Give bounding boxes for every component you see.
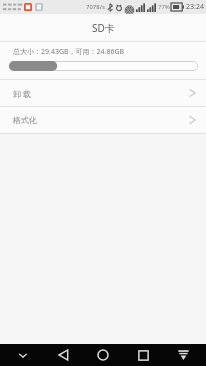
staticText: SD卡 <box>92 21 115 35</box>
staticText: 77% <box>158 3 170 11</box>
button[interactable]: 格式化 <box>0 107 206 133</box>
button[interactable]: Home <box>86 344 120 366</box>
button[interactable]: Collapse <box>6 344 40 366</box>
staticText: 23:24 <box>186 2 204 12</box>
staticText: 7078/s <box>86 3 105 11</box>
staticText: 格式化 <box>13 115 37 125</box>
staticText: 卸 载 <box>13 88 32 99</box>
button[interactable]: Back <box>46 344 80 366</box>
button[interactable]: Hide keyboard <box>166 344 200 366</box>
button[interactable]: Recent apps <box>126 344 160 366</box>
staticText: 总大小：29.43GB，可用：24.86GB <box>13 47 125 57</box>
button[interactable]: 卸 载 <box>0 80 206 106</box>
